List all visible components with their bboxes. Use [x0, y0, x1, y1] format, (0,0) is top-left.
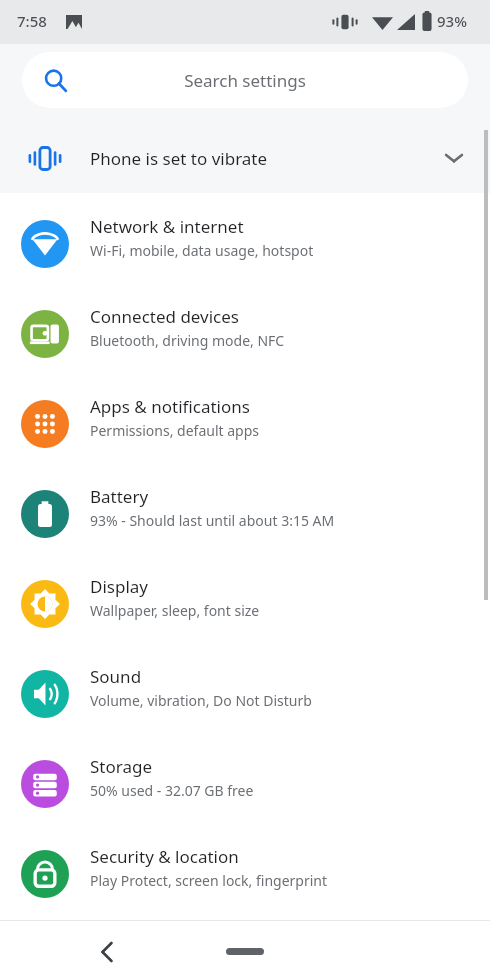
- button[interactable]: Phone is set to vibrate: [0, 124, 490, 193]
- staticText: Battery: [90, 485, 149, 508]
- staticText: 93%: [437, 11, 467, 31]
- staticText: Bluetooth, driving mode, NFC: [90, 331, 285, 350]
- staticText: Apps & notifications: [90, 395, 250, 418]
- staticText: Wi-Fi, mobile, data usage, hotspot: [90, 241, 314, 260]
- staticText: 50% used - 32.07 GB free: [90, 781, 254, 800]
- button[interactable]: Network & internet: [0, 193, 490, 283]
- button[interactable]: Connected devices: [0, 283, 490, 373]
- staticText: Sound: [90, 665, 142, 688]
- staticText: 7:58: [17, 11, 47, 31]
- staticText: Display: [90, 575, 148, 598]
- other: Expand vibrate details: [443, 151, 465, 165]
- staticText: Permissions, default apps: [90, 421, 260, 440]
- staticText: Volume, vibration, Do Not Disturb: [90, 691, 312, 710]
- button[interactable]: Sound: [0, 643, 490, 733]
- staticText: Connected devices: [90, 305, 240, 328]
- button[interactable]: Security & location: [0, 823, 490, 913]
- staticText: Security & location: [90, 845, 239, 868]
- staticText: Network & internet: [90, 215, 244, 238]
- button[interactable]: Storage: [0, 733, 490, 823]
- staticText: Storage: [90, 755, 153, 778]
- button[interactable]: Home: [226, 948, 264, 955]
- button[interactable]: Search settings: [22, 52, 468, 108]
- staticText: Phone is set to vibrate: [90, 147, 268, 170]
- button[interactable]: Battery: [0, 463, 490, 553]
- staticText: 93% - Should last until about 3:15 AM: [90, 511, 335, 530]
- staticText: Play Protect, screen lock, fingerprint: [90, 871, 328, 890]
- staticText: Search settings: [184, 69, 306, 92]
- button[interactable]: Back: [83, 928, 131, 976]
- button[interactable]: Display: [0, 553, 490, 643]
- button[interactable]: Apps & notifications: [0, 373, 490, 463]
- staticText: Wallpaper, sleep, font size: [90, 601, 260, 620]
